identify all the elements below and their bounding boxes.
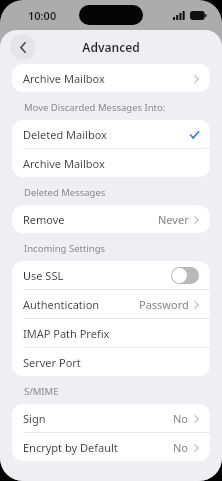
button[interactable]: Encrypt by Default [12, 433, 210, 461]
button[interactable]: Authentication [12, 290, 210, 318]
button[interactable]: Deleted Mailbox [12, 120, 210, 148]
button[interactable]: Remove [12, 205, 210, 233]
staticText: Sign [23, 411, 46, 426]
staticText: Move Discarded Messages Into: [24, 101, 166, 114]
button[interactable]: Server Port [12, 348, 210, 376]
button[interactable]: Archive Mailbox [12, 149, 210, 177]
button[interactable]: Sign [12, 404, 210, 432]
button[interactable]: Archive Mailbox [12, 64, 210, 92]
button[interactable]: Use SSL toggle, off [171, 267, 199, 284]
button[interactable]: IMAP Path Prefix [12, 319, 210, 347]
staticText: Archive Mailbox [23, 156, 105, 171]
staticText: Deleted Mailbox [23, 127, 107, 142]
staticText: No [173, 411, 189, 426]
staticText: Remove [23, 212, 65, 227]
staticText: Authentication [23, 297, 100, 312]
staticText: Server Port [23, 355, 81, 370]
button[interactable]: Use SSL [12, 261, 210, 289]
staticText: Password [139, 297, 189, 312]
staticText: Deleted Messages [24, 186, 106, 199]
staticText: Incoming Settings [24, 242, 106, 255]
staticText: Advanced [82, 39, 140, 55]
button[interactable]: Back [10, 34, 36, 60]
staticText: Use SSL [23, 268, 64, 283]
staticText: 10:00 [28, 8, 57, 23]
staticText: No [173, 440, 189, 455]
staticText: Archive Mailbox [23, 71, 105, 86]
staticText: Encrypt by Default [23, 440, 118, 455]
staticText: IMAP Path Prefix [23, 326, 110, 341]
staticText: Never [158, 212, 189, 227]
staticText: S/MIME [24, 385, 59, 398]
